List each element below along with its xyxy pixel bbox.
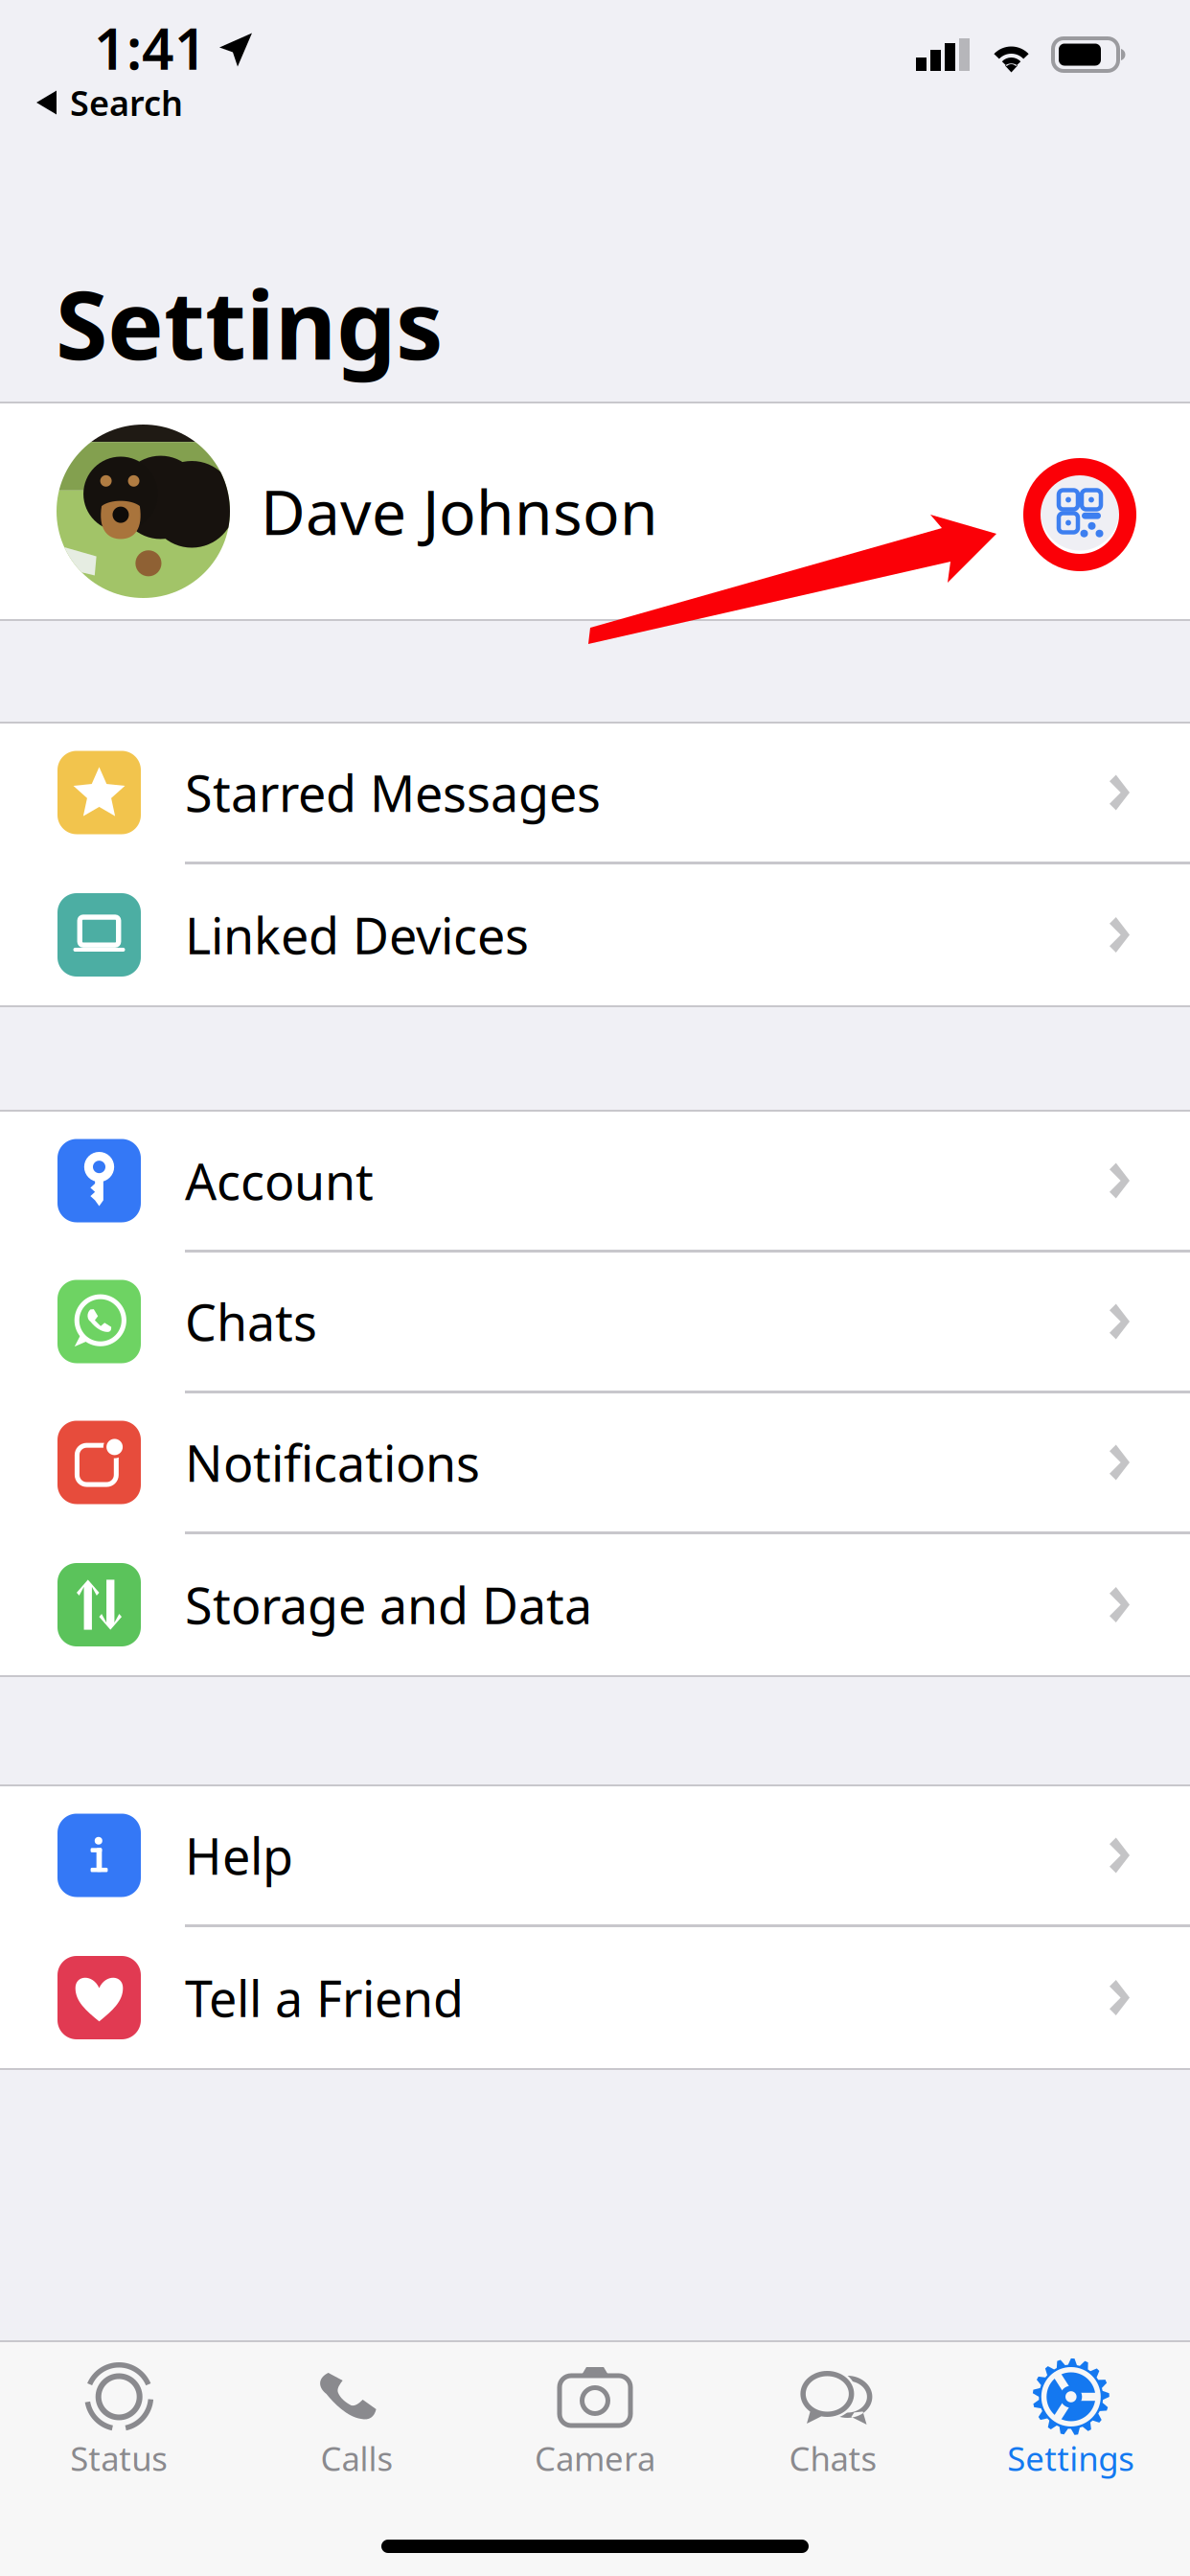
button[interactable]: Status	[0, 2348, 238, 2480]
staticText: Notifications	[185, 1429, 480, 1496]
staticText: Settings	[1007, 2436, 1135, 2480]
button[interactable]: Search	[0, 76, 183, 129]
button[interactable]: Camera	[476, 2348, 714, 2480]
staticText: Help	[185, 1822, 293, 1888]
button[interactable]: Chats	[714, 2348, 952, 2480]
button[interactable]: Calls	[238, 2348, 476, 2480]
staticText: Storage and Data	[185, 1572, 592, 1638]
button[interactable]: Linked Devices	[0, 864, 1190, 1005]
staticText: Chats	[185, 1288, 317, 1355]
button[interactable]: Help	[0, 1786, 1190, 1927]
button[interactable]: Storage and Data	[0, 1534, 1190, 1675]
staticText: Starred Messages	[185, 759, 601, 826]
button[interactable]: Chats	[0, 1253, 1190, 1393]
staticText: Status	[70, 2436, 168, 2480]
staticText: Calls	[321, 2436, 393, 2480]
button[interactable]: Notifications	[0, 1393, 1190, 1534]
button[interactable]: Account	[0, 1112, 1190, 1253]
staticText: Account	[185, 1148, 374, 1214]
staticText: Tell a Friend	[185, 1965, 464, 2031]
staticText: Camera	[535, 2436, 655, 2480]
button[interactable]: My QR code	[1041, 472, 1190, 551]
staticText: Linked Devices	[185, 902, 529, 968]
button[interactable]: Settings	[952, 2348, 1190, 2480]
staticText: Dave Johnson	[261, 471, 658, 552]
staticText: Settings	[56, 260, 444, 386]
staticText: 1:41	[94, 11, 207, 85]
staticText: Chats	[789, 2436, 877, 2480]
button[interactable]: Tell a Friend	[0, 1927, 1190, 2068]
staticText: Search	[70, 80, 183, 125]
button[interactable]: Starred Messages	[0, 724, 1190, 864]
